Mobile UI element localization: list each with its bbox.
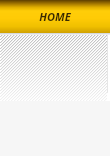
button[interactable]: HOME: [0, 0, 110, 33]
staticText: HOME: [39, 9, 71, 24]
